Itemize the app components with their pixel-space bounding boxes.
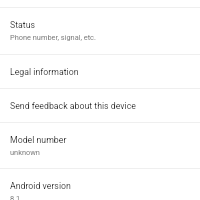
button[interactable]: Android version [0, 169, 200, 200]
staticText: Phone number, signal, etc. [10, 33, 96, 42]
staticText: Send feedback about this device [10, 101, 136, 111]
button[interactable]: Legal information [0, 55, 200, 88]
button[interactable]: Status [0, 8, 200, 54]
button[interactable]: Send feedback about this device [0, 89, 200, 122]
staticText: Android version [10, 181, 71, 191]
staticText: unknown [10, 148, 40, 157]
staticText: Model number [10, 135, 67, 145]
staticText: Status [10, 20, 36, 30]
staticText: Legal information [10, 67, 79, 77]
button[interactable]: Model number [0, 123, 200, 168]
staticText: 8.1 [10, 194, 21, 200]
